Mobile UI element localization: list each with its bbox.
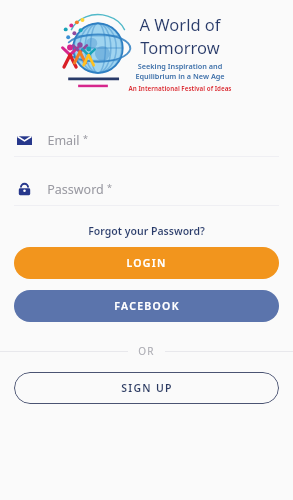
button[interactable]: Email [0, 128, 293, 152]
staticText: LOGIN [126, 256, 167, 270]
other: Email [17, 133, 32, 148]
button[interactable]: SIGN UP [14, 372, 279, 404]
staticText: * [83, 132, 88, 144]
staticText: Seeking Inspiration and [128, 61, 232, 71]
staticText: Forgot your Password? [88, 224, 205, 238]
other: Password [17, 182, 32, 197]
button[interactable]: FACEBOOK [14, 290, 279, 322]
button[interactable]: LOGIN [14, 247, 279, 279]
staticText: A World of [128, 13, 232, 35]
staticText: Password [47, 181, 104, 198]
staticText: Email [47, 132, 80, 149]
staticText: Tomorrow [128, 36, 232, 58]
button[interactable]: Forgot your Password? [0, 224, 293, 238]
staticText: SIGN UP [121, 381, 173, 395]
button[interactable]: Password [0, 177, 293, 201]
staticText: An International Festival of Ideas [128, 84, 232, 91]
staticText: * [107, 181, 112, 193]
staticText: FACEBOOK [114, 299, 180, 313]
staticText: OR [138, 344, 155, 358]
staticText: Equilibrium in a New Age [128, 71, 232, 81]
